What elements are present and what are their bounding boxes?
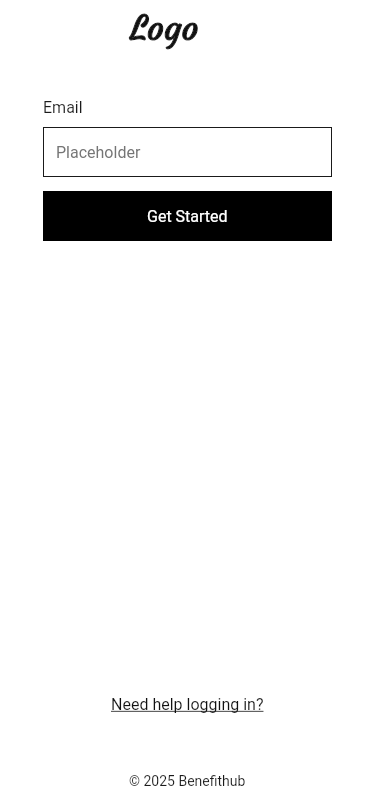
staticText: Get Started — [147, 207, 228, 226]
button[interactable]: Need help logging in? — [105, 691, 270, 718]
staticText: © 2025 Benefithub — [129, 773, 246, 789]
staticText: Need help logging in? — [111, 695, 264, 714]
staticText: Placeholder — [56, 143, 141, 162]
button[interactable]: Get Started — [43, 191, 332, 241]
staticText: Logo — [130, 8, 199, 49]
staticText: Email — [43, 98, 83, 117]
staticText: Logo — [130, 8, 199, 49]
button[interactable]: Placeholder — [43, 127, 332, 177]
